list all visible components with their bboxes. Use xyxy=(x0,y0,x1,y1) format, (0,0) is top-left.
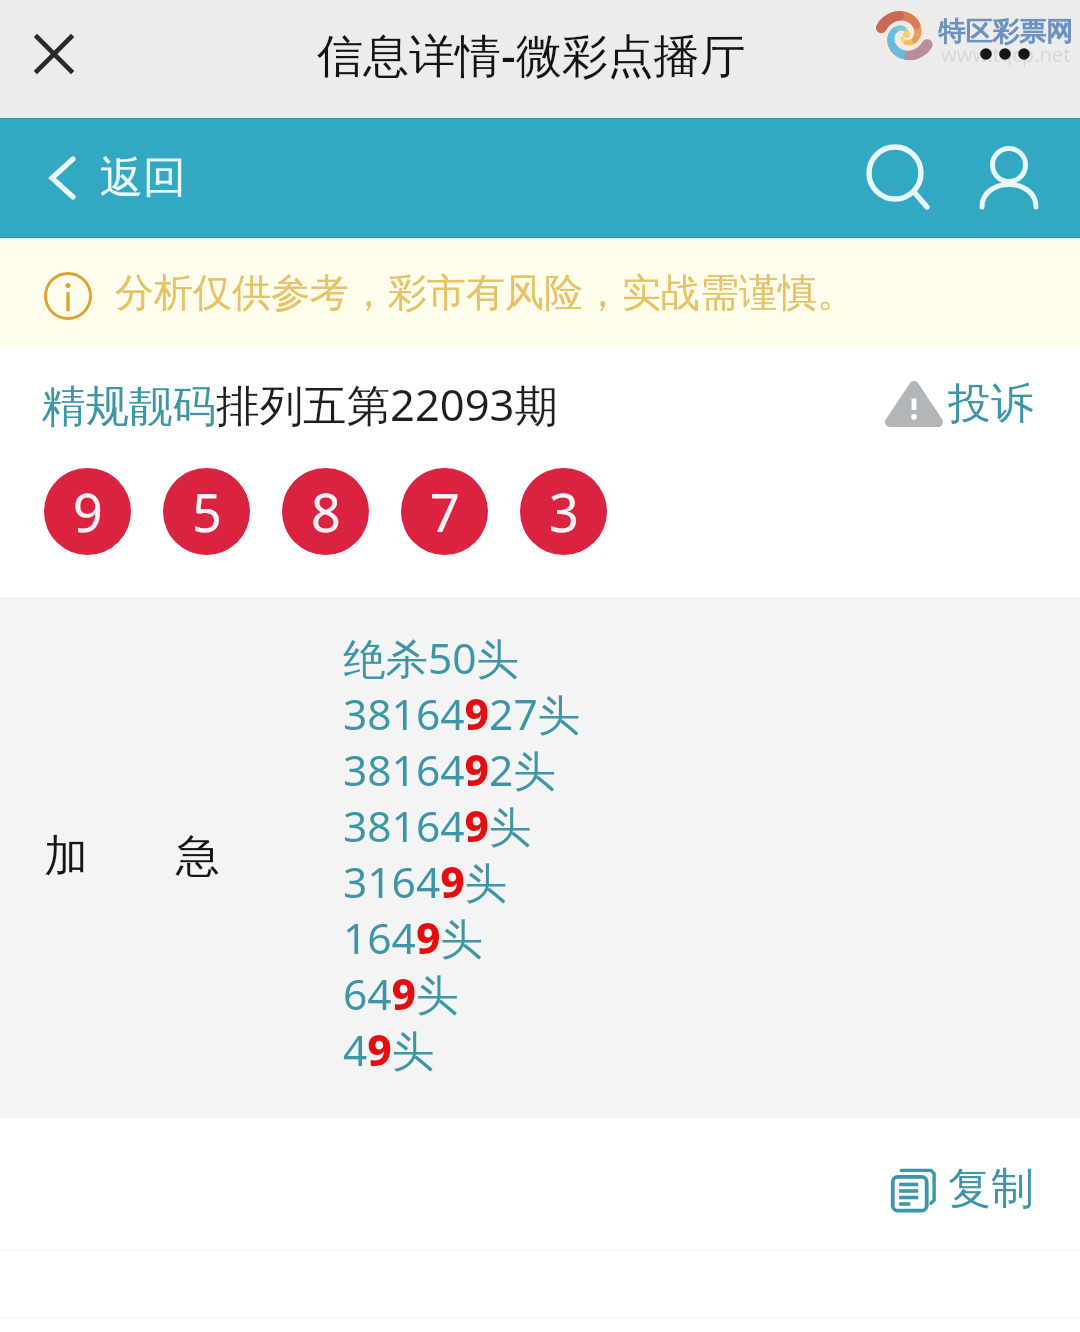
staticText: 49头 xyxy=(343,1021,435,1077)
staticText: 1649头 xyxy=(343,909,483,965)
staticText: 7 xyxy=(430,476,460,547)
staticText: 5 xyxy=(192,476,222,547)
staticText: 9 xyxy=(73,476,103,547)
staticText: 3816492头 xyxy=(343,741,556,797)
staticText: www.tqcp.net xyxy=(941,41,1071,68)
staticText: 复制 xyxy=(948,1162,1034,1216)
button[interactable]: Close xyxy=(18,18,90,90)
staticText: 加 xyxy=(44,829,88,884)
staticText: 8 xyxy=(311,476,341,547)
button[interactable]: 返回 xyxy=(49,119,395,237)
staticText: 绝杀50头 xyxy=(343,629,520,685)
button[interactable]: Account xyxy=(955,119,1060,237)
staticText: 381649头 xyxy=(343,797,532,853)
staticText: 投诉 xyxy=(948,377,1034,431)
staticText: 31649头 xyxy=(343,853,508,909)
staticText: 38164927头 xyxy=(343,685,581,741)
staticText: 3 xyxy=(549,476,579,547)
button[interactable]: Search xyxy=(840,119,950,237)
button[interactable]: 复制 xyxy=(888,1160,1038,1218)
staticText: 信息详情-微彩点播厅 xyxy=(317,23,746,86)
staticText: 649头 xyxy=(343,965,459,1021)
staticText: 特区彩票网 xyxy=(938,15,1073,49)
staticText: 急 xyxy=(176,829,220,884)
staticText: 精规靓码排列五第22093期 xyxy=(42,374,558,433)
staticText: 返回 xyxy=(100,151,186,205)
button[interactable]: 投诉 xyxy=(885,373,1040,435)
staticText: 分析仅供参考，彩市有风险，实战需谨慎。 xyxy=(115,268,856,317)
